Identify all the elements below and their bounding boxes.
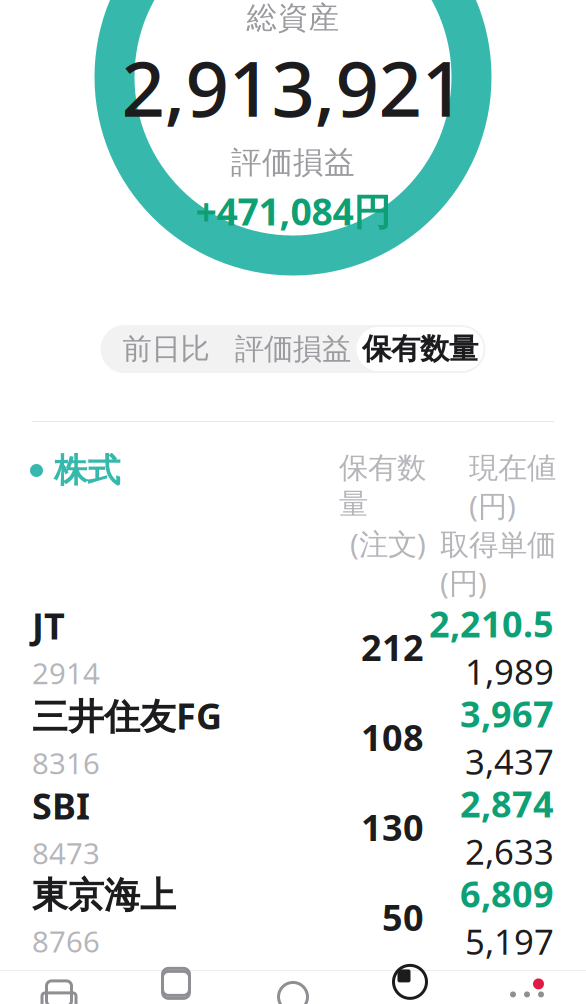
button[interactable]: 三井住友FG (0, 692, 586, 782)
staticText: 2,633 (465, 828, 554, 874)
staticText: JT (32, 602, 65, 649)
staticText: 保有数量 (339, 450, 426, 522)
staticText: 取得単価(円) (440, 527, 556, 602)
staticText: 3,967 (460, 690, 554, 737)
staticText: 保有数量 (362, 331, 478, 367)
staticText: 50 (382, 893, 424, 941)
staticText: 三井住友FG (32, 692, 222, 739)
staticText: 8316 (32, 743, 100, 782)
button[interactable]: ポートフォリオ (351, 972, 468, 1004)
staticText: 212 (361, 623, 424, 671)
button[interactable]: ホーム (0, 972, 117, 1004)
button[interactable]: メニュー (468, 972, 585, 1004)
staticText: 8473 (32, 833, 100, 872)
button[interactable]: 東京海上 (0, 872, 586, 962)
staticText: 評価損益 (231, 144, 355, 181)
staticText: +471,084円 (195, 186, 390, 236)
staticText: 8766 (32, 922, 100, 961)
button[interactable]: SBI (0, 782, 586, 872)
button[interactable]: 前日比 (102, 327, 229, 371)
button[interactable]: お気に入り (117, 972, 234, 1004)
staticText: 2,874 (460, 780, 554, 827)
staticText: 2914 (32, 653, 100, 692)
staticText: SBI (32, 782, 90, 829)
staticText: 前日比 (122, 331, 209, 367)
staticText: 現在値(円) (469, 450, 556, 525)
staticText: 108 (361, 713, 424, 761)
button[interactable]: JT (0, 602, 586, 692)
staticText: 東京海上 (32, 873, 176, 918)
staticText: 3,437 (465, 738, 554, 784)
staticText: 総資産 (246, 0, 339, 37)
staticText: 2,210.5 (429, 600, 554, 647)
staticText: 評価損益 (235, 331, 351, 367)
staticText: 5,197 (465, 918, 554, 964)
staticText: 株式 (54, 450, 120, 491)
button[interactable]: 保有数量 (356, 327, 483, 371)
staticText: 1,989 (465, 648, 554, 694)
staticText: (注文) (350, 524, 426, 563)
button[interactable]: さがす (234, 972, 351, 1004)
button[interactable]: 評価損益 (229, 327, 356, 371)
staticText: 6,809 (460, 870, 554, 917)
staticText: 130 (361, 803, 424, 851)
staticText: 2,913,921 (121, 37, 464, 138)
